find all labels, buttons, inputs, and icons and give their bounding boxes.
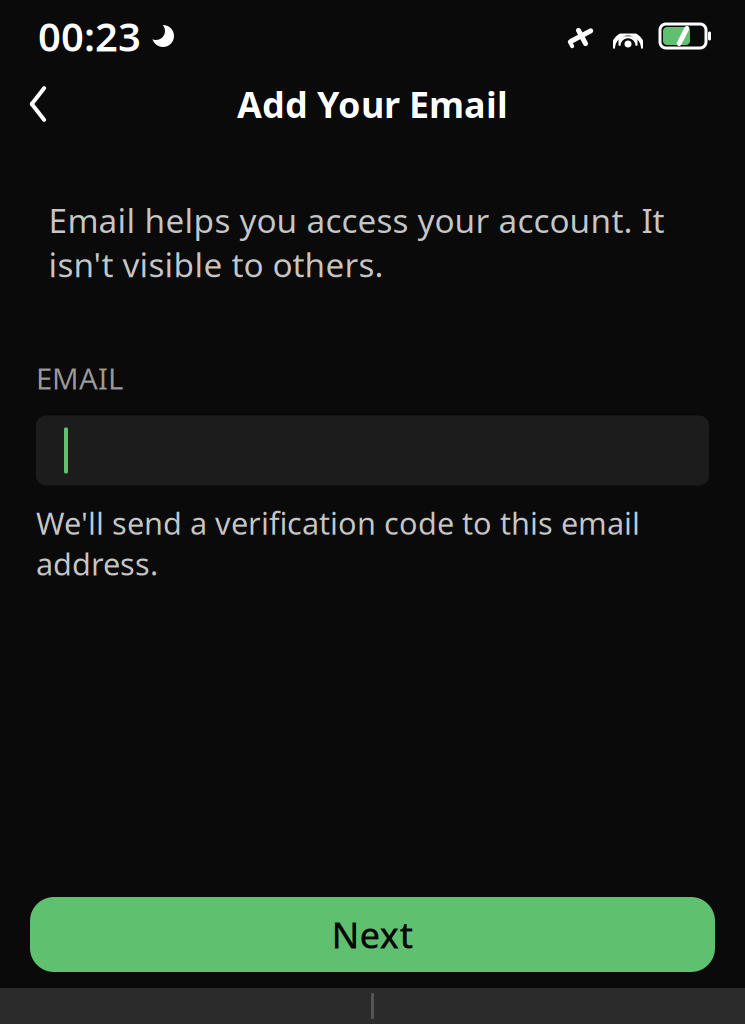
staticText: 00:23 (38, 9, 141, 62)
staticText: We'll send a verification code to this e… (36, 502, 640, 584)
staticText: Email helps you access your account. It … (48, 198, 664, 286)
button[interactable]: Back (6, 74, 70, 134)
button[interactable]: Next (30, 897, 715, 972)
staticText: Next (331, 911, 413, 958)
staticText: Add Your Email (237, 80, 508, 128)
button[interactable]: Email address text field (36, 415, 709, 485)
staticText: EMAIL (36, 358, 123, 397)
